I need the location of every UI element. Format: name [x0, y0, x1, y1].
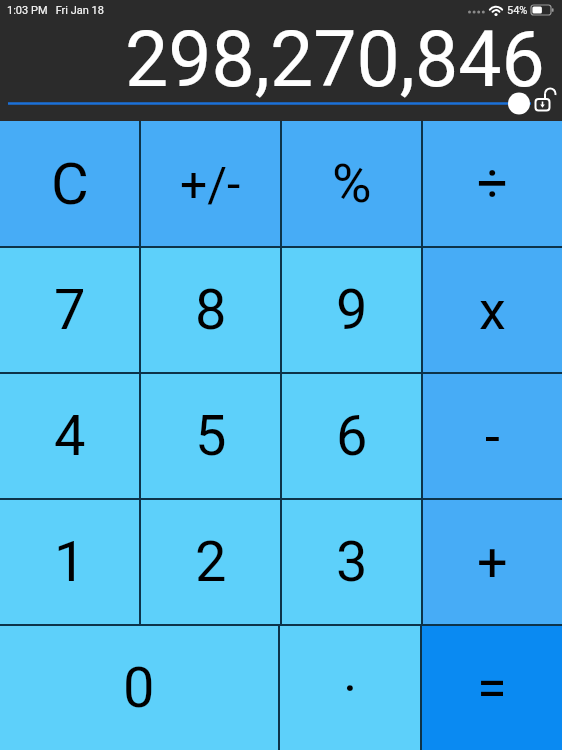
staticText: 8 — [195, 277, 227, 343]
staticText: 1:03 PM Fri Jan 18 — [7, 4, 104, 17]
staticText: 3 — [336, 529, 368, 595]
staticText: +/- — [180, 156, 241, 212]
staticText: 1 — [54, 529, 86, 595]
staticText: 298,270,846 — [125, 15, 545, 105]
button[interactable]: 4 — [0, 374, 139, 498]
button[interactable]: + — [423, 500, 562, 624]
button[interactable]: C — [0, 121, 139, 246]
staticText: - — [485, 405, 500, 468]
staticText: ÷ — [477, 152, 508, 215]
button[interactable]: 5 — [141, 374, 280, 498]
button[interactable]: 3 — [282, 500, 421, 624]
button[interactable]: = — [422, 626, 562, 750]
staticText: = — [477, 657, 507, 720]
staticText: % — [332, 152, 372, 215]
staticText: 9 — [336, 277, 368, 343]
staticText: 54% — [507, 4, 528, 17]
button[interactable]: % — [282, 121, 421, 246]
staticText: 0 — [123, 655, 155, 721]
button[interactable]: 8 — [141, 248, 280, 372]
button[interactable]: 7 — [0, 248, 139, 372]
staticText: · — [343, 657, 358, 720]
staticText: 4 — [54, 403, 86, 469]
staticText: 2 — [195, 529, 227, 595]
staticText: 7 — [54, 277, 86, 343]
button[interactable]: +/- — [141, 121, 280, 246]
button[interactable]: ÷ — [423, 121, 562, 246]
staticText: C — [51, 150, 89, 218]
button[interactable]: 2 — [141, 500, 280, 624]
button[interactable]: 9 — [282, 248, 421, 372]
button[interactable]: x — [423, 248, 562, 372]
button[interactable]: - — [423, 374, 562, 498]
button[interactable]: · — [280, 626, 420, 750]
staticText: x — [479, 279, 506, 342]
button[interactable]: 6 — [282, 374, 421, 498]
staticText: + — [477, 531, 508, 594]
staticText: 6 — [336, 403, 368, 469]
staticText: 5 — [195, 403, 227, 469]
button[interactable]: 1 — [0, 500, 139, 624]
button[interactable]: 0 — [0, 626, 278, 750]
